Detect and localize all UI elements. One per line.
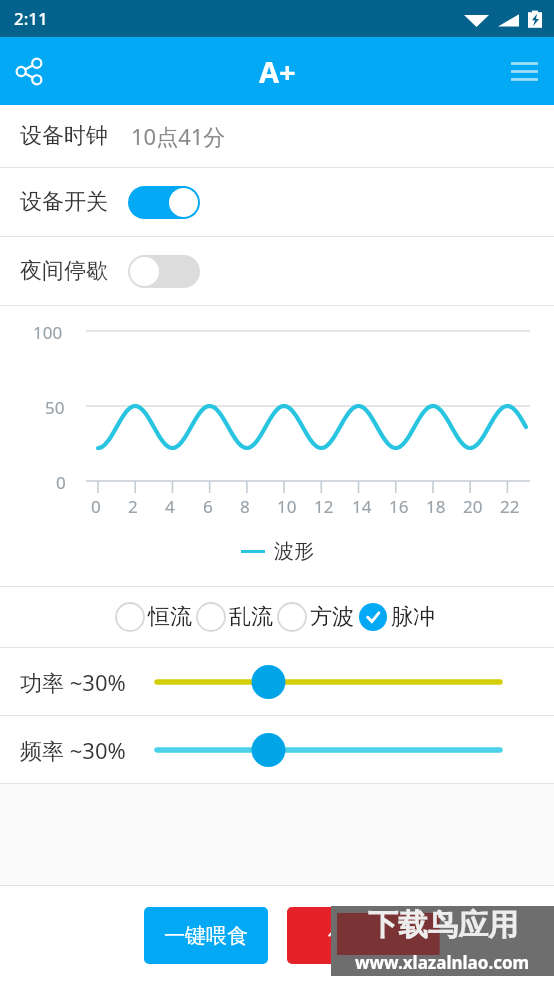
button[interactable]: 设备开关	[128, 186, 200, 219]
staticText: 10点41分	[131, 121, 226, 151]
staticText: 恒流	[148, 603, 192, 631]
staticText: 2:11	[14, 7, 48, 30]
button[interactable]: 夜间停歇	[128, 255, 200, 288]
button[interactable]: Share	[0, 42, 58, 100]
staticText: 2	[128, 495, 138, 518]
staticText: 20	[463, 495, 483, 518]
staticText: 下载鸟应用	[368, 906, 518, 944]
staticText: 功率 ~30%	[20, 667, 157, 697]
staticText: 4	[165, 495, 175, 518]
staticText: 夜间停歇	[20, 257, 108, 285]
staticText: 100	[33, 321, 63, 344]
staticText: 0	[91, 495, 101, 518]
staticText: 14	[352, 495, 372, 518]
staticText: 6	[203, 495, 213, 518]
staticText: 0	[56, 471, 66, 494]
staticText: 16	[389, 495, 409, 518]
staticText: 一键喂食	[164, 923, 248, 949]
button[interactable]: 恒流	[115, 602, 196, 632]
button[interactable]: 保存	[287, 907, 411, 964]
button[interactable]: 频率 ~30%	[157, 730, 500, 770]
staticText: 8	[240, 495, 250, 518]
button[interactable]: 设备开关	[0, 168, 554, 236]
staticText: A+	[259, 52, 296, 91]
staticText: 保存	[328, 923, 370, 949]
button[interactable]: 功率 ~30%	[157, 662, 500, 702]
button[interactable]: 乱流	[196, 602, 277, 632]
staticText: 10	[277, 495, 297, 518]
button[interactable]: 波形	[241, 539, 314, 564]
staticText: 脉冲	[391, 603, 435, 631]
staticText: 50	[45, 396, 65, 419]
button[interactable]: 一键喂食	[144, 907, 268, 964]
button[interactable]: 脉冲	[358, 602, 439, 632]
staticText: 12	[314, 495, 334, 518]
staticText: 22	[500, 495, 520, 518]
staticText: 波形	[274, 539, 314, 564]
button[interactable]: Menu	[494, 41, 554, 101]
staticText: 设备时钟	[20, 122, 108, 150]
button[interactable]: 夜间停歇	[0, 237, 554, 305]
staticText: 设备开关	[20, 188, 108, 216]
button[interactable]: 方波	[277, 602, 358, 632]
button[interactable]: 设备时钟	[0, 105, 554, 167]
staticText: 方波	[310, 603, 354, 631]
staticText: 18	[426, 495, 446, 518]
staticText: www.xlazalnlao.com	[355, 951, 530, 974]
staticText: 乱流	[229, 603, 273, 631]
staticText: 频率 ~30%	[20, 735, 157, 765]
